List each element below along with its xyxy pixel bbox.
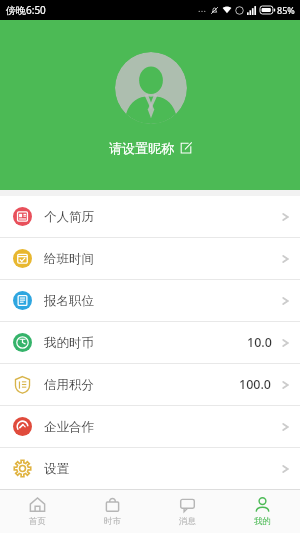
staticText: 报名职位: [44, 293, 94, 309]
staticText: 首页: [29, 516, 46, 527]
staticText: 时市: [104, 516, 121, 527]
staticText: 个人简历: [44, 209, 94, 225]
staticText: 85%: [277, 4, 295, 16]
button[interactable]: 企业合作: [0, 406, 300, 447]
staticText: 请设置昵称: [109, 140, 174, 156]
button[interactable]: 消息: [150, 490, 225, 533]
button[interactable]: 信用积分: [0, 364, 300, 405]
button[interactable]: 请设置昵称: [105, 138, 196, 158]
staticText: 傍晚6:50: [6, 3, 46, 17]
staticText: 设置: [44, 461, 69, 477]
button[interactable]: 报名职位: [0, 280, 300, 321]
button[interactable]: 个人简历: [0, 196, 300, 237]
staticText: 给班时间: [44, 251, 94, 267]
button[interactable]: 我的: [225, 490, 300, 533]
staticText: 企业合作: [44, 419, 94, 435]
staticText: 10.0: [247, 334, 272, 351]
button[interactable]: 时市: [75, 490, 150, 533]
staticText: 100.0: [239, 376, 272, 393]
button[interactable]: 给班时间: [0, 238, 300, 279]
staticText: 信用积分: [44, 377, 94, 393]
button[interactable]: 设置: [0, 448, 300, 489]
button[interactable]: Avatar: [115, 52, 187, 124]
staticText: 我的: [254, 516, 271, 527]
button[interactable]: 首页: [0, 490, 75, 533]
button[interactable]: 我的时币: [0, 322, 300, 363]
staticText: 我的时币: [44, 335, 94, 351]
staticText: 消息: [179, 516, 196, 527]
